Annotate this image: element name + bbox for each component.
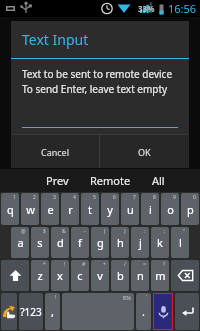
staticText: v — [97, 268, 103, 283]
button[interactable]: ' — [136, 293, 151, 330]
staticText: h — [117, 235, 124, 250]
staticText: 5 — [93, 194, 96, 201]
staticText: EN — [123, 294, 131, 302]
staticText: 0 — [193, 194, 196, 201]
button[interactable]: 2 — [21, 193, 39, 225]
button[interactable]: OK — [100, 135, 189, 168]
staticText: e — [47, 202, 54, 217]
staticText: @ — [21, 228, 26, 235]
staticText: ! — [55, 294, 57, 301]
button[interactable]: Space — [62, 293, 134, 330]
staticText: k — [157, 235, 163, 250]
staticText: d — [57, 235, 64, 250]
button[interactable]: Shift — [1, 260, 29, 291]
button[interactable]: = — [131, 260, 149, 291]
staticText: p — [187, 202, 194, 217]
staticText: q — [7, 202, 14, 217]
staticText: ?123 — [20, 305, 42, 319]
button[interactable]: ) — [111, 227, 129, 258]
button[interactable]: Swipe input — [1, 293, 17, 330]
staticText: To send Enter, leave text empty — [22, 82, 168, 96]
staticText: All — [152, 173, 165, 188]
staticText: : — [144, 228, 146, 235]
button[interactable]: 3 — [41, 193, 59, 225]
button[interactable]: Voice input — [154, 294, 172, 329]
button[interactable]: 6 — [101, 193, 119, 225]
staticText: + — [103, 261, 106, 268]
button[interactable]: # — [71, 260, 89, 291]
staticText: Cancel — [41, 146, 70, 158]
button[interactable]: 7 — [121, 193, 139, 225]
staticText: j — [139, 235, 142, 250]
button[interactable]: Remote — [84, 170, 137, 191]
staticText: / — [124, 261, 126, 268]
button[interactable]: $ — [31, 227, 49, 258]
staticText: Text to be sent to remote device — [22, 67, 173, 81]
staticText: 1 — [13, 194, 16, 201]
staticText: u — [127, 202, 134, 217]
staticText: x — [57, 268, 63, 283]
staticText: . — [142, 304, 145, 319]
staticText: c — [77, 268, 83, 283]
button[interactable]: All — [146, 170, 171, 191]
staticText: 3 — [53, 194, 56, 201]
button[interactable]: ? — [151, 260, 169, 291]
button[interactable]: - — [71, 227, 89, 258]
staticText: 7 — [133, 194, 136, 201]
staticText: Prev — [46, 173, 69, 188]
button[interactable]: 9 — [161, 193, 179, 225]
button[interactable]: " — [171, 227, 189, 258]
staticText: r — [68, 202, 73, 217]
staticText: f — [78, 235, 82, 250]
staticText: b — [117, 268, 124, 283]
button[interactable]: ! — [45, 293, 60, 330]
button[interactable]: ?123 — [19, 293, 43, 330]
staticText: ' — [146, 294, 148, 301]
button[interactable]: 1 — [1, 193, 19, 225]
staticText: 16:56 — [168, 1, 197, 16]
button[interactable]: 8 — [141, 193, 159, 225]
staticText: - — [84, 228, 86, 235]
staticText: m — [155, 268, 166, 283]
button[interactable]: ! — [51, 260, 69, 291]
staticText: Text Input — [22, 30, 89, 49]
staticText: n — [137, 268, 144, 283]
button[interactable]: ( — [91, 227, 109, 258]
staticText: ) — [124, 228, 126, 235]
button[interactable]: ; — [151, 227, 169, 258]
button[interactable]: 4 — [61, 193, 79, 225]
button[interactable]: Enter — [175, 293, 199, 330]
button[interactable]: Backspace — [171, 260, 199, 291]
staticText: ; — [164, 228, 166, 235]
staticText: 6 — [113, 194, 116, 201]
button[interactable]: @ — [11, 227, 29, 258]
button[interactable]: 0 — [181, 193, 199, 225]
button[interactable]: + — [91, 260, 109, 291]
staticText: $ — [43, 228, 46, 235]
button[interactable]: Prev — [40, 170, 75, 191]
staticText: OK — [138, 146, 151, 158]
staticText: Remote — [90, 173, 131, 188]
button[interactable]: 5 — [81, 193, 99, 225]
staticText: o — [167, 202, 174, 217]
button[interactable]: * — [31, 260, 49, 291]
staticText: 8 — [153, 194, 156, 201]
staticText: ? — [163, 261, 166, 268]
staticText: t — [88, 202, 92, 217]
staticText: y — [107, 202, 113, 217]
staticText: w — [26, 202, 35, 217]
staticText: ! — [64, 261, 66, 268]
staticText: s — [37, 235, 43, 250]
staticText: & — [62, 228, 66, 235]
staticText: 4 — [73, 194, 76, 201]
button[interactable]: / — [111, 260, 129, 291]
staticText: z — [37, 268, 43, 283]
staticText: 33% — [138, 3, 155, 14]
staticText: l — [179, 235, 182, 250]
button[interactable]: : — [131, 227, 149, 258]
staticText: a — [17, 235, 24, 250]
button[interactable]: Cancel — [11, 135, 99, 168]
button[interactable]: & — [51, 227, 69, 258]
staticText: = — [143, 261, 146, 268]
staticText: ( — [104, 228, 106, 235]
